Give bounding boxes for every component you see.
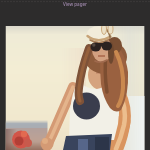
- button[interactable]: View pager: [63, 1, 87, 7]
